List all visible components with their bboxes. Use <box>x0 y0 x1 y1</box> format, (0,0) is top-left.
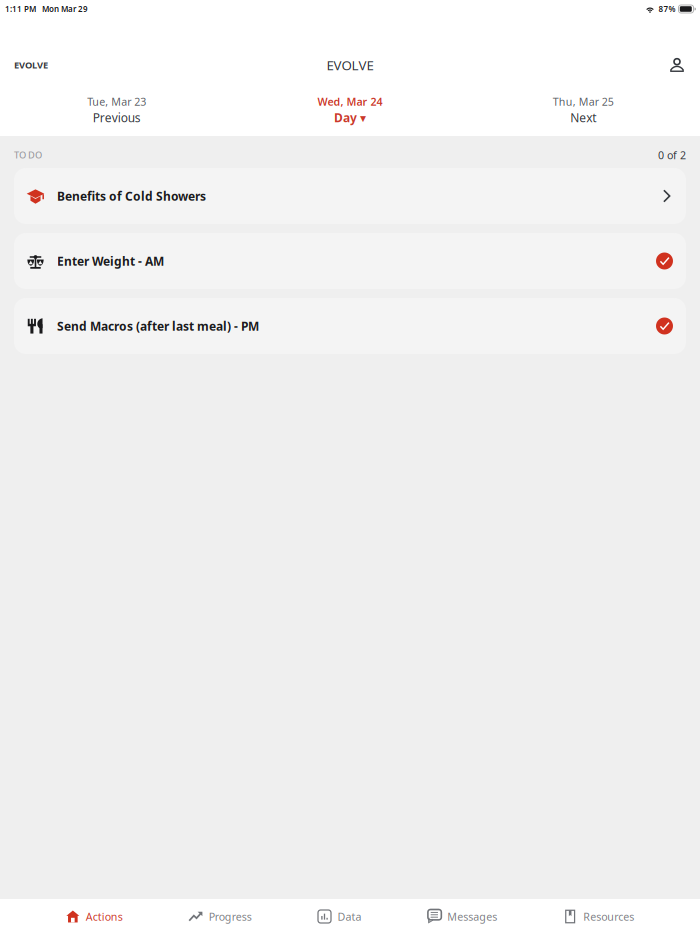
staticText: Wed, Mar 24 <box>317 94 382 109</box>
button[interactable]: EVOLVE <box>0 50 58 80</box>
staticText: Day ▾ <box>334 110 366 125</box>
button[interactable]: Actions <box>66 899 123 934</box>
staticText: Progress <box>209 909 252 924</box>
staticText: Data <box>337 909 361 924</box>
button[interactable]: Enter Weight - AM <box>14 233 686 289</box>
button[interactable]: Profile <box>662 50 700 80</box>
button[interactable]: Data <box>317 899 361 934</box>
staticText: EVOLVE <box>326 56 373 74</box>
staticText: Messages <box>447 909 497 924</box>
staticText: Enter Weight - AM <box>57 253 164 269</box>
button[interactable]: Wed, Mar 24 <box>233 96 467 124</box>
staticText: Thu, Mar 25 <box>553 94 614 109</box>
staticText: Send Macros (after last meal) - PM <box>57 318 259 334</box>
staticText: 1:11 PM <box>5 4 36 14</box>
staticText: Tue, Mar 23 <box>87 94 146 109</box>
staticText: EVOLVE <box>14 59 48 71</box>
staticText: 0 of 2 <box>658 148 686 162</box>
staticText: TO DO <box>14 149 42 161</box>
staticText: Benefits of Cold Showers <box>57 188 206 204</box>
button[interactable]: Send Macros (after last meal) - PM <box>14 298 686 354</box>
button[interactable]: Progress <box>189 899 252 934</box>
staticText: Previous <box>93 110 141 125</box>
button[interactable]: Benefits of Cold Showers <box>14 168 686 224</box>
staticText: Resources <box>583 909 634 924</box>
staticText: Next <box>570 110 596 125</box>
button[interactable]: Thu, Mar 25 <box>467 96 700 124</box>
staticText: 87% <box>658 4 675 14</box>
button[interactable]: Messages <box>427 899 497 934</box>
staticText: Mon Mar 29 <box>42 4 88 14</box>
staticText: Actions <box>86 909 123 924</box>
button[interactable]: Resources <box>563 899 634 934</box>
button[interactable]: Tue, Mar 23 <box>0 96 233 124</box>
